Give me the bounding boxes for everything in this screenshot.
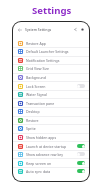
button[interactable]: Sprite: [13, 124, 89, 132]
staticText: Notification Settings: [26, 58, 60, 63]
staticText: Lock Screen: [26, 84, 46, 89]
button[interactable]: Desktop: [13, 107, 89, 115]
staticText: Restore App: [26, 41, 47, 46]
button[interactable]: Toggle Auto sync data: [77, 169, 85, 173]
staticText: Sprite: [26, 126, 36, 131]
button[interactable]: More options: [79, 26, 86, 33]
staticText: Auto sync data: [26, 169, 51, 174]
button[interactable]: Toggle Show advance row key: [77, 152, 85, 156]
button[interactable]: Toggle Lock Screen: [77, 84, 85, 88]
button[interactable]: Auto sync data: [13, 167, 89, 175]
staticText: Transaction pane: [26, 101, 55, 106]
button[interactable]: Share: [72, 26, 79, 33]
button[interactable]: Water Signal: [13, 90, 89, 98]
staticText: Launch at device startup: [26, 144, 67, 149]
staticText: Water Signal: [26, 92, 47, 97]
button[interactable]: Notification Settings: [13, 56, 89, 64]
button[interactable]: Show hidden apps: [13, 133, 89, 141]
staticText: Keep screen on: [26, 161, 52, 166]
staticText: Settings: [32, 4, 72, 17]
button[interactable]: Toggle Keep screen on: [77, 161, 85, 165]
staticText: System Settings: [25, 27, 52, 32]
staticText: Default Launcher Settings: [26, 49, 69, 54]
staticText: Grid View Size: [26, 66, 49, 71]
button[interactable]: Transaction pane: [13, 99, 89, 107]
button[interactable]: Restore App: [13, 39, 89, 47]
button[interactable]: Show advance row key: [13, 150, 89, 158]
button[interactable]: Default Launcher Settings: [13, 47, 89, 55]
button[interactable]: Back: [16, 26, 23, 33]
button[interactable]: Grid View Size: [13, 64, 89, 72]
button[interactable]: Lock Screen: [13, 82, 89, 90]
button[interactable]: Background: [13, 73, 89, 81]
button[interactable]: Launch at device startup: [13, 142, 89, 150]
button[interactable]: Toggle Launch at device startup: [77, 144, 85, 148]
staticText: Desktop: [26, 109, 40, 114]
staticText: Restore: [26, 118, 39, 123]
staticText: Show advance row key: [26, 152, 64, 157]
button[interactable]: Keep screen on: [13, 159, 89, 167]
staticText: Show hidden apps: [26, 135, 57, 140]
staticText: Background: [26, 75, 46, 80]
button[interactable]: Restore: [13, 116, 89, 124]
